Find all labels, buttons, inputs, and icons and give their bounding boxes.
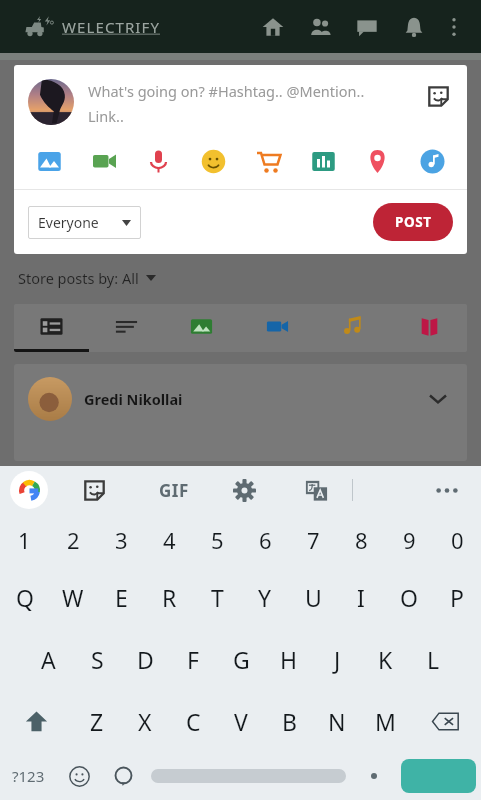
button[interactable]: L xyxy=(409,628,457,690)
button[interactable]: Symbols xyxy=(0,758,57,794)
staticText: 0 xyxy=(451,525,464,555)
button[interactable]: Audio xyxy=(139,142,177,180)
button[interactable]: A xyxy=(24,628,73,690)
staticText: WELECTRIFY xyxy=(62,17,161,37)
button[interactable]: N xyxy=(313,690,361,752)
button[interactable]: Video xyxy=(85,142,123,180)
button[interactable]: I xyxy=(337,566,385,628)
button[interactable]: Text posts xyxy=(89,304,164,349)
staticText: K xyxy=(378,644,393,675)
button[interactable]: 6 xyxy=(241,514,289,566)
staticText: 5 xyxy=(211,525,224,555)
staticText: X xyxy=(138,706,152,737)
button[interactable]: Messages xyxy=(352,12,382,42)
staticText: Y xyxy=(258,582,272,613)
button[interactable]: Space xyxy=(151,758,346,794)
button[interactable]: C xyxy=(169,690,217,752)
button[interactable]: J xyxy=(313,628,361,690)
button[interactable]: R xyxy=(145,566,193,628)
button[interactable]: Translate xyxy=(298,472,334,508)
button[interactable]: S xyxy=(73,628,121,690)
staticText: M xyxy=(375,706,396,737)
button[interactable]: 0 xyxy=(433,514,481,566)
staticText: I xyxy=(357,582,365,613)
button[interactable]: 7 xyxy=(289,514,337,566)
button[interactable]: 4 xyxy=(145,514,193,566)
staticText: B xyxy=(282,706,297,737)
button[interactable]: 8 xyxy=(337,514,385,566)
button[interactable]: W xyxy=(49,566,97,628)
staticText: What's going on? #Hashtag.. @Mention.. xyxy=(88,81,365,101)
button[interactable]: Shift xyxy=(0,690,73,752)
button[interactable]: Music xyxy=(315,304,391,349)
button[interactable]: Shop xyxy=(249,142,287,180)
button[interactable]: Settings xyxy=(226,472,262,508)
button[interactable]: GIF xyxy=(150,473,198,507)
button[interactable]: Y xyxy=(241,566,289,628)
button[interactable]: 2 xyxy=(49,514,97,566)
button[interactable]: G xyxy=(217,628,265,690)
button[interactable]: Enter xyxy=(401,758,476,794)
button[interactable]: Notifications xyxy=(399,12,429,42)
button[interactable]: K xyxy=(361,628,409,690)
button[interactable]: 5 xyxy=(193,514,241,566)
button[interactable]: More xyxy=(427,473,467,507)
staticText: GIF xyxy=(159,479,189,502)
button[interactable]: 3 xyxy=(97,514,145,566)
button[interactable]: Store posts by: All xyxy=(18,268,481,288)
staticText: 1 xyxy=(18,525,31,555)
button[interactable]: P xyxy=(433,566,481,628)
button[interactable]: Stickers xyxy=(421,79,455,113)
button[interactable]: V xyxy=(217,690,265,752)
button[interactable]: O xyxy=(385,566,433,628)
staticText: 7 xyxy=(307,525,320,555)
button[interactable]: Location xyxy=(358,142,396,180)
button[interactable]: Backspace xyxy=(409,690,481,752)
button[interactable]: Emoji xyxy=(57,758,101,794)
button[interactable]: E xyxy=(97,566,145,628)
button[interactable]: D xyxy=(121,628,169,690)
button[interactable]: Stickers xyxy=(76,472,112,508)
button[interactable]: Everyone xyxy=(28,206,141,239)
button[interactable]: M xyxy=(361,690,409,752)
button[interactable]: 9 xyxy=(385,514,433,566)
button[interactable]: Google xyxy=(10,471,48,509)
button[interactable]: Z xyxy=(73,690,121,752)
button[interactable]: Photo xyxy=(30,142,68,180)
button[interactable]: People xyxy=(305,12,335,42)
button[interactable]: B xyxy=(265,690,313,752)
button[interactable]: Comma xyxy=(101,758,146,794)
button[interactable]: More options xyxy=(441,10,467,44)
button[interactable]: H xyxy=(265,628,313,690)
staticText: A xyxy=(41,644,56,675)
staticText: G xyxy=(233,644,250,675)
staticText: L xyxy=(427,644,440,675)
button[interactable]: Videos xyxy=(239,304,315,349)
button[interactable]: 1 xyxy=(0,514,49,566)
button[interactable]: Maps xyxy=(391,304,467,349)
button[interactable]: Q xyxy=(0,566,49,628)
button[interactable]: Period xyxy=(351,758,396,794)
staticText: V xyxy=(234,706,248,737)
staticText: Store posts by: All xyxy=(18,268,139,288)
button[interactable]: All posts xyxy=(14,304,89,349)
button[interactable]: Photos xyxy=(164,304,239,349)
staticText: ?123 xyxy=(12,766,45,786)
staticText: U xyxy=(305,582,322,613)
button[interactable]: Home xyxy=(258,12,288,42)
button[interactable]: X xyxy=(121,690,169,752)
staticText: F xyxy=(187,644,199,675)
button[interactable]: Gredi Nikollai xyxy=(14,364,467,461)
staticText: C xyxy=(186,706,201,737)
button[interactable]: POST xyxy=(373,203,453,241)
button[interactable]: Poll xyxy=(304,142,342,180)
staticText: D xyxy=(137,644,154,675)
button[interactable]: T xyxy=(193,566,241,628)
button[interactable]: F xyxy=(169,628,217,690)
button[interactable]: Music xyxy=(413,142,451,180)
staticText: 9 xyxy=(403,525,416,555)
staticText: 3 xyxy=(115,525,128,555)
button[interactable]: U xyxy=(289,566,337,628)
button[interactable]: Post options xyxy=(423,384,453,414)
button[interactable]: Feeling xyxy=(194,142,232,180)
